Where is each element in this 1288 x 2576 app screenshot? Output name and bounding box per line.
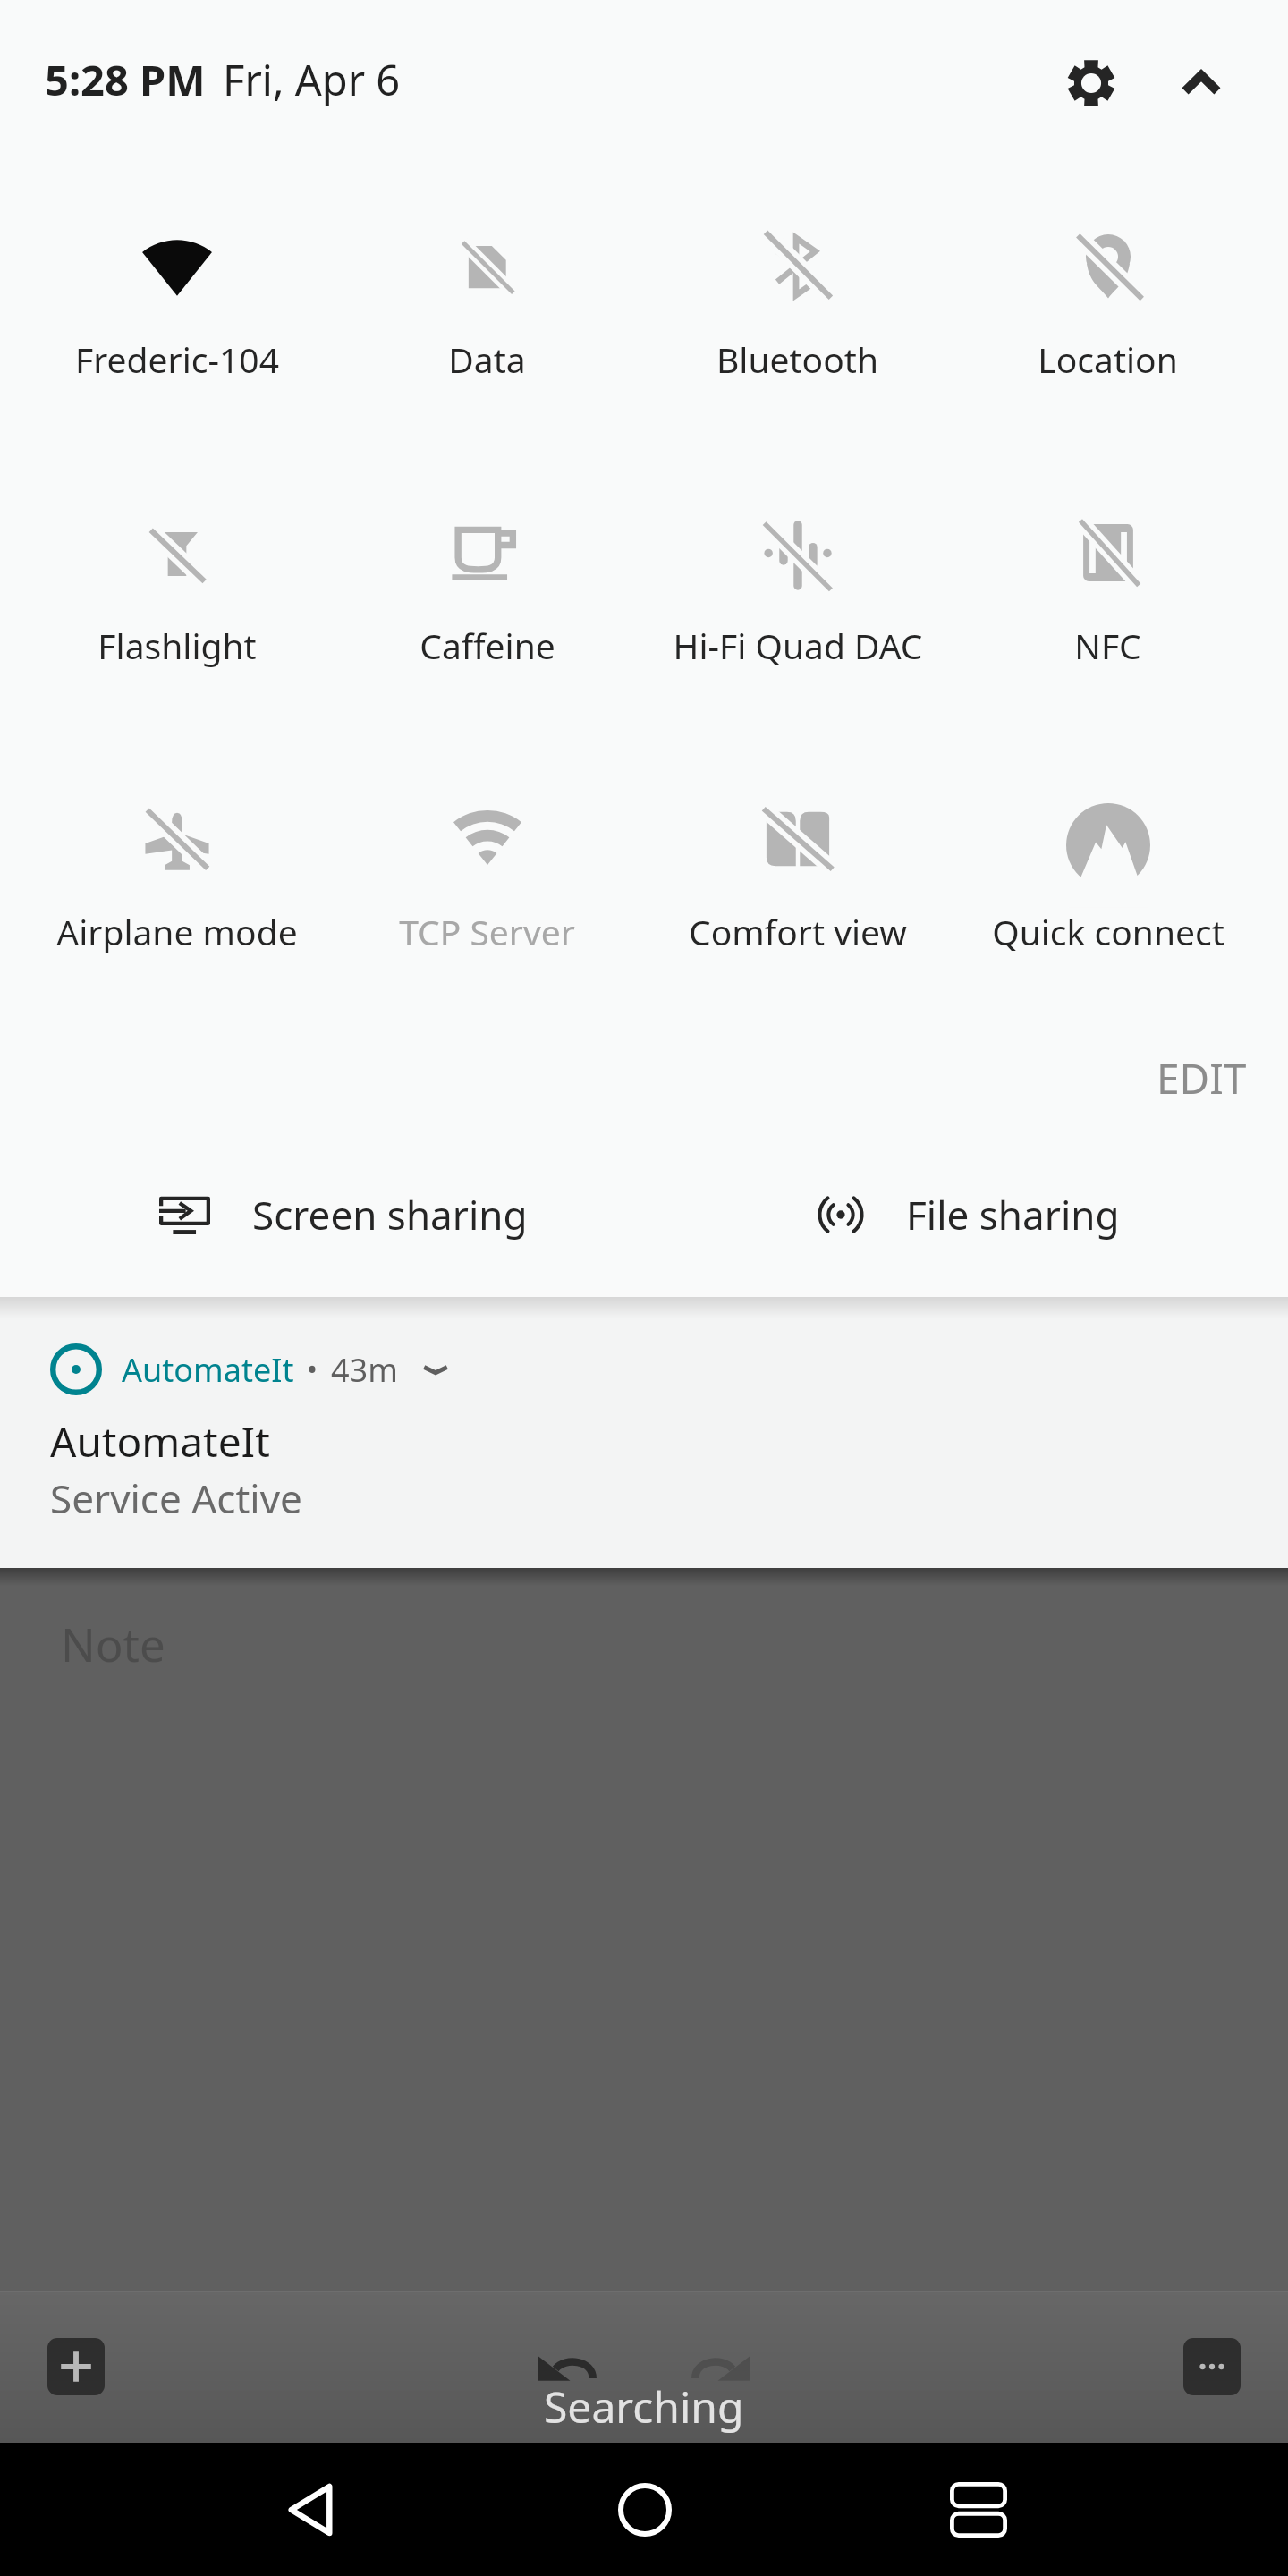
- button[interactable]: Collapse: [1152, 34, 1250, 132]
- staticText: File sharing: [906, 1188, 1120, 1241]
- staticText: TCP Server: [399, 908, 575, 955]
- button[interactable]: Location: [953, 165, 1263, 452]
- button[interactable]: Caffeine: [332, 452, 642, 738]
- staticText: Quick connect: [992, 908, 1224, 955]
- staticText: Caffeine: [419, 622, 555, 669]
- button[interactable]: Quick connect: [953, 738, 1263, 1024]
- button[interactable]: More options: [1183, 2338, 1241, 2395]
- staticText: 5:28 PM: [45, 51, 206, 108]
- button[interactable]: Hi-Fi Quad DAC: [642, 452, 953, 738]
- button[interactable]: Airplane mode: [22, 738, 332, 1024]
- staticText: Service Active: [50, 1471, 302, 1525]
- staticText: EDIT: [1157, 1050, 1247, 1106]
- button[interactable]: TCP Server: [332, 738, 642, 1024]
- staticText: Fri, Apr 6: [223, 51, 401, 108]
- staticText: Frederic-104: [75, 335, 279, 383]
- staticText: Location: [1038, 335, 1178, 383]
- button[interactable]: Screen sharing: [0, 1131, 644, 1297]
- button[interactable]: Frederic-104: [22, 165, 332, 452]
- staticText: Screen sharing: [252, 1188, 528, 1241]
- staticText: NFC: [1074, 622, 1141, 669]
- button[interactable]: Home: [478, 2443, 811, 2576]
- button[interactable]: Data: [332, 165, 642, 452]
- button[interactable]: Settings: [1042, 34, 1140, 132]
- button[interactable]: Back: [143, 2443, 478, 2576]
- button[interactable]: File sharing: [644, 1131, 1288, 1297]
- staticText: Airplane mode: [56, 908, 298, 955]
- staticText: •: [307, 1350, 318, 1389]
- staticText: Searching: [544, 2377, 744, 2436]
- button[interactable]: Recent apps: [811, 2443, 1145, 2576]
- staticText: AutomateIt: [50, 1413, 270, 1470]
- button[interactable]: Comfort view: [642, 738, 953, 1024]
- button[interactable]: Add: [47, 2338, 105, 2395]
- staticText: Hi-Fi Quad DAC: [673, 622, 923, 669]
- staticText: Bluetooth: [716, 335, 878, 383]
- staticText: Comfort view: [689, 908, 907, 955]
- button[interactable]: Undo: [531, 2347, 606, 2386]
- staticText: Flashlight: [97, 622, 257, 669]
- staticText: Data: [448, 335, 526, 383]
- button[interactable]: Bluetooth: [642, 165, 953, 452]
- staticText: AutomateIt: [122, 1348, 294, 1392]
- staticText: 43m: [331, 1348, 398, 1392]
- button[interactable]: AutomateIt: [0, 1297, 1288, 1568]
- button[interactable]: Redo: [682, 2347, 757, 2386]
- staticText: Note: [61, 1613, 165, 1674]
- button[interactable]: EDIT: [1135, 1036, 1268, 1121]
- button[interactable]: NFC: [953, 452, 1263, 738]
- button[interactable]: Flashlight: [22, 452, 332, 738]
